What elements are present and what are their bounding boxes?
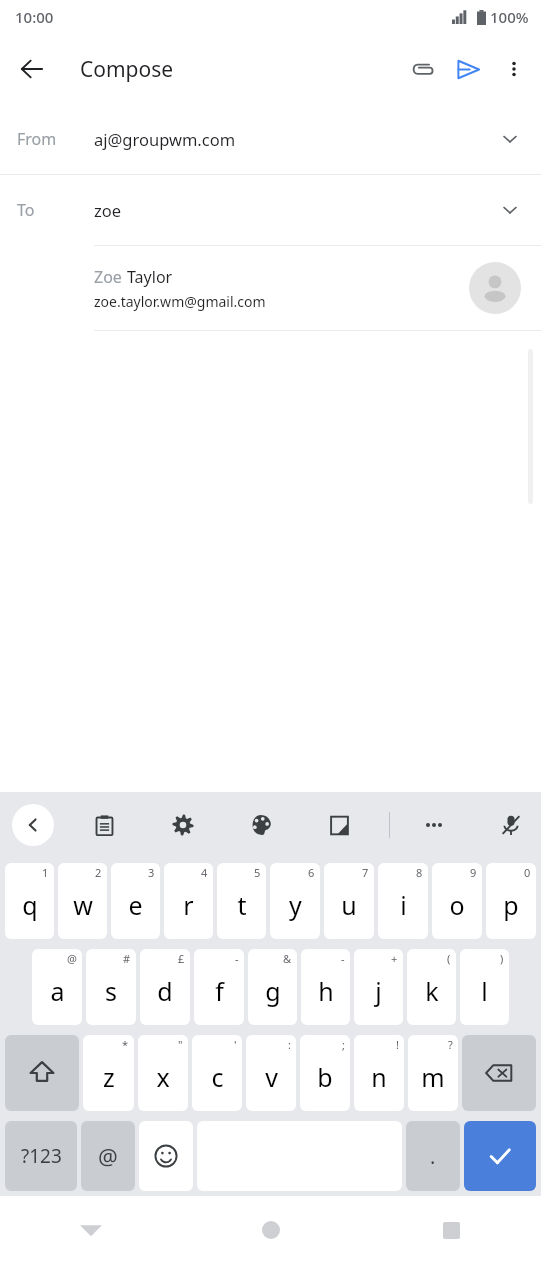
button[interactable]: Recents <box>361 1196 541 1264</box>
staticText: 7 <box>362 865 369 880</box>
button[interactable]: - <box>194 949 244 1025</box>
button[interactable]: 1 <box>5 863 54 939</box>
button[interactable]: 8 <box>378 863 428 939</box>
staticText: . <box>430 1143 436 1170</box>
button[interactable]: Back <box>8 45 56 93</box>
button[interactable]: Backspace <box>462 1035 536 1111</box>
button[interactable]: 7 <box>324 863 374 939</box>
staticText: ) <box>500 951 504 966</box>
staticText: d <box>157 974 173 1008</box>
staticText: b <box>317 1060 333 1094</box>
staticText: : <box>288 1037 291 1052</box>
button[interactable]: Emoji <box>139 1121 193 1191</box>
button[interactable]: ? <box>408 1035 458 1111</box>
staticText: ; <box>342 1037 345 1052</box>
staticText: " <box>178 1037 183 1052</box>
staticText: v <box>265 1060 278 1094</box>
staticText: 3 <box>148 865 155 880</box>
button[interactable]: ' <box>192 1035 242 1111</box>
staticText: k <box>425 974 439 1008</box>
staticText: p <box>503 888 519 922</box>
staticText: ' <box>234 1037 237 1052</box>
button[interactable]: Expand toolbar <box>12 804 54 846</box>
button[interactable]: Floating keyboard <box>317 803 361 847</box>
button[interactable]: @ <box>32 949 82 1025</box>
button[interactable]: 2 <box>58 863 107 939</box>
button[interactable]: Send <box>445 46 491 92</box>
button[interactable]: @ <box>81 1121 135 1191</box>
staticText: zoe <box>94 199 122 221</box>
button[interactable]: ?123 <box>5 1121 77 1191</box>
button[interactable]: " <box>138 1035 188 1111</box>
button[interactable]: Zoe <box>0 246 541 330</box>
staticText: & <box>283 951 292 966</box>
staticText: x <box>156 1060 170 1094</box>
staticText: @ <box>67 951 77 966</box>
staticText: t <box>237 888 247 922</box>
staticText: u <box>341 888 357 922</box>
staticText: ! <box>396 1037 399 1052</box>
staticText: w <box>73 888 93 922</box>
staticText: j <box>375 974 382 1008</box>
staticText: # <box>123 951 131 966</box>
button[interactable]: To <box>0 175 541 245</box>
button[interactable]: : <box>246 1035 296 1111</box>
staticText: 2 <box>95 865 102 880</box>
staticText: e <box>128 888 143 922</box>
staticText: a <box>50 974 65 1008</box>
button[interactable]: # <box>86 949 136 1025</box>
staticText: ? <box>448 1037 453 1052</box>
button[interactable]: More <box>412 803 456 847</box>
button[interactable]: Home <box>181 1196 361 1264</box>
staticText: y <box>289 888 302 922</box>
staticText: @ <box>98 1141 118 1171</box>
staticText: zoe.taylor.wm@gmail.com <box>94 292 266 311</box>
button[interactable]: ( <box>407 949 456 1025</box>
staticText: 5 <box>254 865 261 880</box>
staticText: r <box>183 888 194 922</box>
button[interactable]: 3 <box>111 863 160 939</box>
button[interactable]: From <box>0 104 541 174</box>
button[interactable]: ! <box>354 1035 404 1111</box>
button[interactable]: * <box>83 1035 134 1111</box>
button[interactable]: More options <box>491 46 537 92</box>
button[interactable]: Attach file <box>399 46 445 92</box>
button[interactable]: Voice input off <box>489 803 533 847</box>
staticText: From <box>17 128 57 150</box>
button[interactable]: Enter <box>464 1121 536 1191</box>
staticText: 100% <box>490 7 529 27</box>
staticText: + <box>391 951 398 966</box>
staticText: ( <box>447 951 451 966</box>
staticText: - <box>341 951 345 966</box>
button[interactable]: - <box>301 949 350 1025</box>
staticText: c <box>211 1060 224 1094</box>
button[interactable]: 9 <box>432 863 482 939</box>
staticText: l <box>481 974 488 1008</box>
button[interactable]: Shift <box>5 1035 79 1111</box>
button[interactable]: ) <box>460 949 509 1025</box>
button[interactable]: . <box>406 1121 460 1191</box>
staticText: z <box>103 1060 115 1094</box>
staticText: 0 <box>524 865 531 880</box>
staticText: f <box>215 974 224 1008</box>
button[interactable]: Clipboard <box>82 803 126 847</box>
button[interactable]: Settings <box>161 803 205 847</box>
button[interactable]: £ <box>140 949 190 1025</box>
button[interactable]: + <box>354 949 403 1025</box>
button[interactable]: 5 <box>217 863 266 939</box>
staticText: To <box>17 199 35 221</box>
button[interactable]: 0 <box>486 863 536 939</box>
button[interactable]: 4 <box>164 863 213 939</box>
staticText: 4 <box>201 865 208 880</box>
staticText: Compose <box>80 55 174 84</box>
staticText: h <box>318 974 334 1008</box>
button[interactable]: 6 <box>270 863 320 939</box>
button[interactable]: Back <box>0 1196 181 1264</box>
staticText: o <box>449 888 465 922</box>
staticText: g <box>265 974 281 1008</box>
staticText: - <box>235 951 239 966</box>
button[interactable]: Themes <box>239 803 283 847</box>
button[interactable]: & <box>248 949 297 1025</box>
button[interactable]: ; <box>300 1035 350 1111</box>
